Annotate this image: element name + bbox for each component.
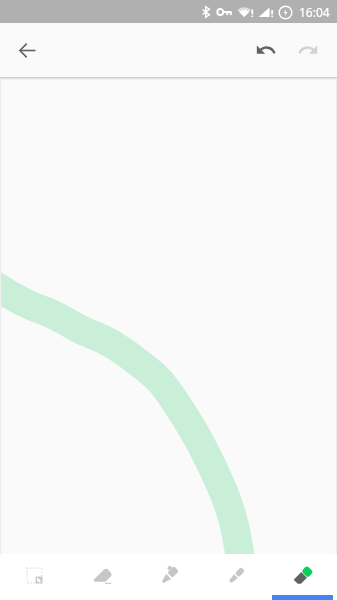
staticText: 16:04 <box>299 4 330 20</box>
button[interactable]: Eraser <box>68 554 136 600</box>
button[interactable]: Pen <box>136 554 203 600</box>
button[interactable]: Select tool <box>0 554 68 600</box>
button[interactable]: Undo <box>245 29 287 71</box>
button[interactable]: Redo <box>287 29 329 71</box>
button[interactable]: Marker <box>270 554 337 600</box>
button[interactable]: Back <box>6 29 48 71</box>
button[interactable]: Pencil <box>203 554 270 600</box>
